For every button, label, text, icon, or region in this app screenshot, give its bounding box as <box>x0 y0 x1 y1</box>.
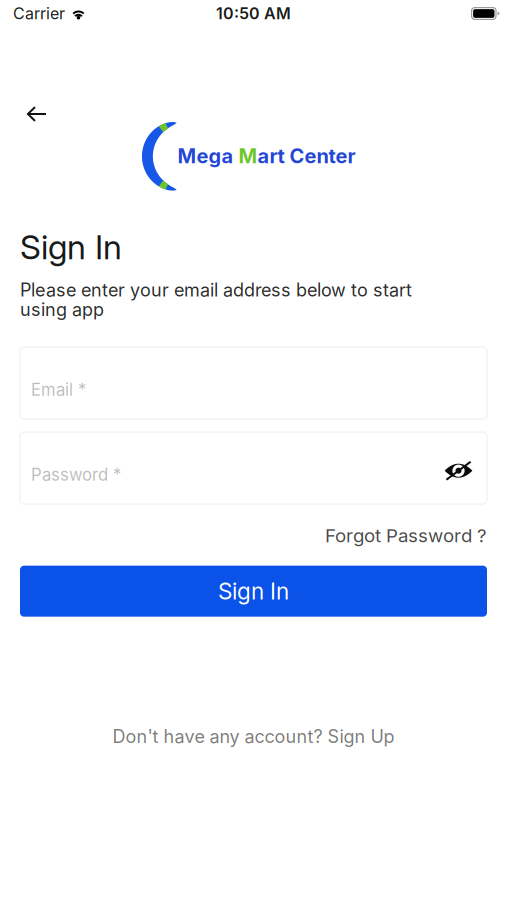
staticText: Password * <box>31 464 121 485</box>
staticText: Carrier <box>13 4 65 23</box>
button[interactable]: Forgot Password ? <box>325 521 487 550</box>
staticText: Please enter your email address below to… <box>20 280 412 319</box>
staticText: Don't have any account? Sign Up <box>112 726 394 747</box>
staticText: Sign In <box>20 227 122 267</box>
staticText: Mega <box>177 144 238 168</box>
staticText: Forgot Password ? <box>325 524 487 547</box>
button[interactable]: Don't have any account? Sign Up <box>112 726 394 747</box>
staticText: 10:50 AM <box>216 4 291 23</box>
staticText: art Center <box>257 144 355 168</box>
button[interactable]: Sign In <box>20 566 487 617</box>
button[interactable]: Back <box>19 100 55 128</box>
staticText: M <box>238 144 257 168</box>
staticText: Email * <box>31 379 86 400</box>
staticText: Sign In <box>218 577 289 605</box>
